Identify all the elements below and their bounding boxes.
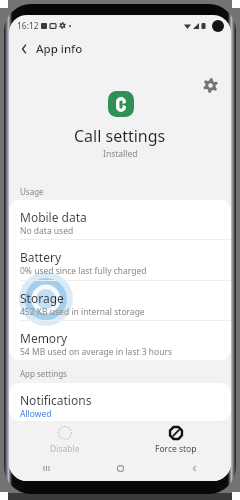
button[interactable]: Back (14, 39, 34, 59)
staticText: No data used (20, 225, 74, 237)
button[interactable]: Storage (9, 281, 231, 321)
button[interactable]: Back (157, 455, 231, 481)
staticText: 16:12 (17, 20, 39, 32)
button[interactable]: Recents (9, 455, 83, 481)
button[interactable]: Memory (9, 321, 231, 360)
staticText: Disable (50, 443, 80, 455)
staticText: Allowed (20, 408, 52, 420)
button[interactable]: Mobile data (9, 200, 231, 240)
staticText: 54 MB used on average in last 3 hours (20, 346, 173, 358)
staticText: Mobile data (20, 209, 87, 225)
staticText: 0% used since last fully charged (20, 265, 147, 277)
staticText: Call settings (74, 125, 166, 147)
staticText: Notifications (20, 392, 92, 408)
staticText: Memory (20, 330, 68, 346)
button[interactable]: Force stop (120, 422, 231, 455)
button[interactable]: Notifications (9, 383, 231, 421)
staticText: 452 KB used in internal storage (20, 306, 145, 318)
button[interactable]: Battery (9, 240, 231, 281)
staticText: App settings (20, 368, 67, 379)
button[interactable]: Settings (203, 78, 218, 93)
button[interactable]: Home (83, 455, 157, 481)
button[interactable]: Disable (9, 422, 120, 455)
staticText: App info (36, 41, 83, 57)
staticText: Battery (20, 249, 62, 265)
staticText: Usage (20, 186, 44, 197)
staticText: Storage (20, 290, 64, 306)
staticText: Force stop (155, 443, 197, 455)
staticText: Installed (103, 148, 138, 160)
